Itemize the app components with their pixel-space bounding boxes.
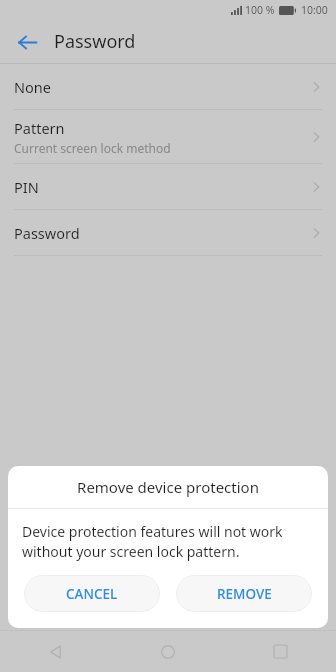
- button[interactable]: None: [0, 64, 336, 109]
- staticText: PIN: [14, 177, 39, 197]
- button[interactable]: CANCEL: [24, 575, 160, 612]
- button[interactable]: Password: [0, 210, 336, 255]
- button[interactable]: Pattern: [0, 110, 336, 163]
- staticText: Remove device protection: [77, 477, 259, 497]
- staticText: 10:00: [301, 3, 328, 17]
- staticText: Pattern: [14, 118, 65, 138]
- staticText: None: [14, 77, 51, 97]
- staticText: Password: [54, 29, 136, 54]
- staticText: 100 %: [245, 3, 275, 17]
- staticText: CANCEL: [66, 585, 118, 603]
- staticText: Password: [14, 223, 80, 243]
- button[interactable]: PIN: [0, 164, 336, 209]
- button[interactable]: REMOVE: [176, 575, 312, 612]
- staticText: Device protection features will not work…: [22, 522, 314, 561]
- staticText: Current screen lock method: [14, 140, 171, 156]
- staticText: REMOVE: [217, 585, 272, 603]
- button[interactable]: Back: [10, 25, 44, 59]
